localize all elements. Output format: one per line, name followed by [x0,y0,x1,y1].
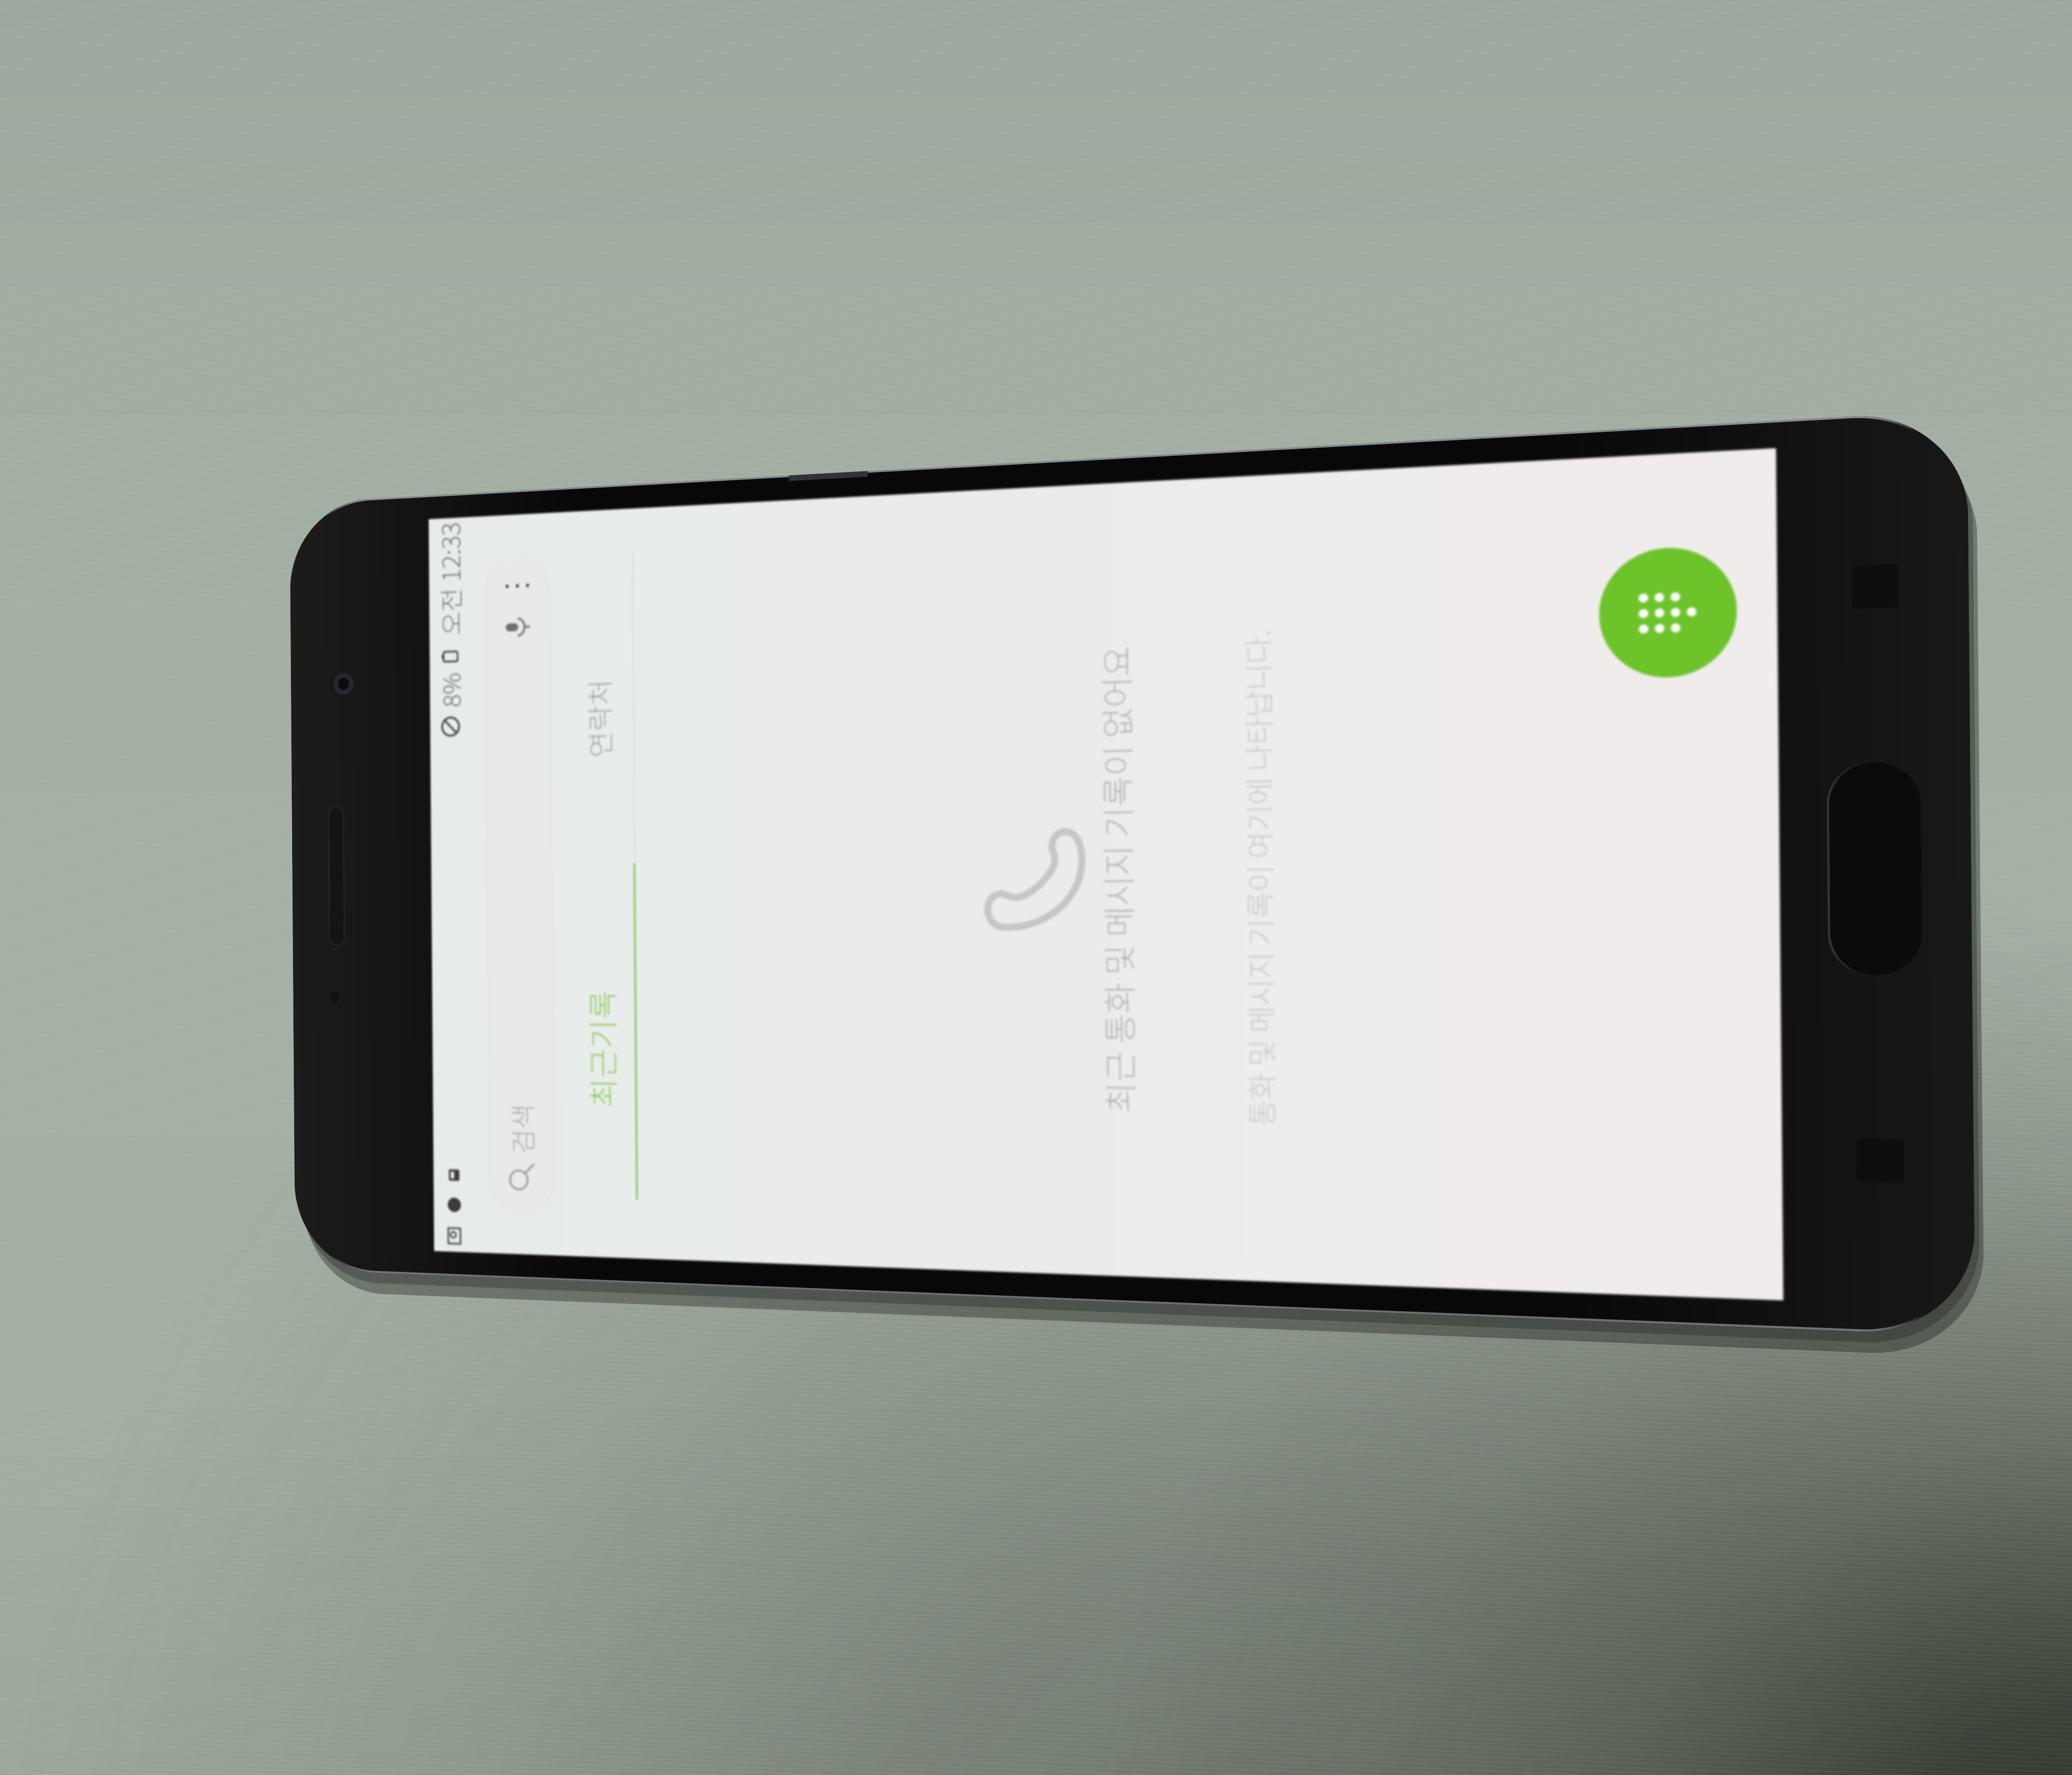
button[interactable]: 검색 [485,556,555,1214]
button[interactable]: 연락처 [563,552,634,884]
staticText: 최근 통화 및 메시지 기록이 없어요 [1090,645,1143,1113]
staticText: 8% [434,672,467,708]
staticText: 연락처 [579,679,618,758]
staticText: 검색 [503,1104,540,1155]
staticText: 최근기록 [579,990,623,1108]
staticText: 통화 및 메시지 기록이 여기에 나타납니다. [1235,629,1282,1127]
button[interactable]: 키패드 [1599,545,1737,679]
staticText: 오전 12:33 [432,521,467,636]
button[interactable]: 최근기록 [565,883,637,1215]
